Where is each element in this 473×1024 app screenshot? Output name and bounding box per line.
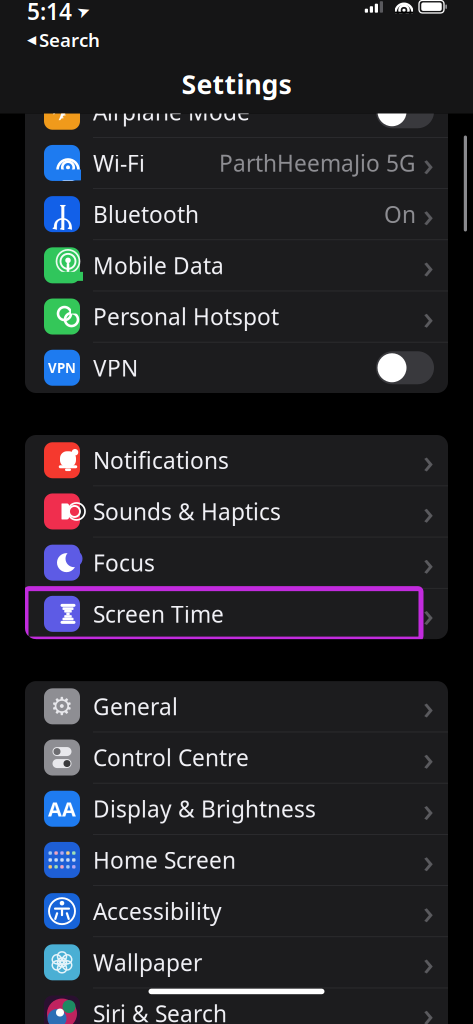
staticText: Search	[39, 27, 100, 52]
staticText: Mobile Data	[93, 250, 224, 280]
button[interactable]: ✈	[25, 86, 448, 137]
staticText: Screen Time	[93, 599, 224, 629]
staticText: ➤	[77, 2, 90, 20]
button[interactable]: Accessibility	[25, 886, 448, 936]
staticText: AA	[48, 795, 76, 822]
staticText: ᛦ	[52, 197, 72, 231]
button[interactable]: 🔔	[25, 435, 448, 485]
staticText: ›	[423, 540, 434, 585]
staticText: ›	[423, 294, 434, 339]
button[interactable]: Siri & Search	[25, 988, 448, 1024]
staticText: ›	[423, 991, 434, 1024]
staticText: Settings	[181, 66, 291, 101]
staticText: ›	[423, 787, 434, 831]
staticText: ›	[423, 838, 434, 882]
staticText: Wi-Fi	[93, 148, 145, 178]
staticText: Notifications	[93, 445, 229, 475]
staticText: Home Screen	[93, 845, 236, 875]
staticText: Airplane Mode	[93, 97, 250, 127]
staticText: On	[384, 199, 416, 229]
staticText: ◀	[27, 33, 36, 46]
staticText: ›	[423, 735, 434, 780]
staticText: Personal Hotspot	[93, 301, 279, 332]
button[interactable]: 🔈	[25, 486, 448, 537]
button[interactable]: ◀	[27, 27, 100, 52]
staticText: Accessibility	[93, 896, 222, 926]
staticText: VPN	[93, 353, 138, 383]
staticText: VPN	[48, 359, 76, 377]
staticText: ›	[423, 592, 434, 636]
staticText: Siri & Search	[93, 998, 227, 1024]
button[interactable]: Control Centre	[25, 732, 448, 783]
staticText: Bluetooth	[93, 199, 199, 229]
staticText: ParthHeemaJio 5G	[219, 148, 416, 178]
staticText: ›	[423, 243, 434, 287]
staticText: ✈	[51, 97, 72, 126]
button[interactable]: @	[25, 291, 448, 342]
staticText: Focus	[93, 548, 155, 578]
staticText: ›	[423, 141, 434, 185]
button[interactable]: Home Screen	[25, 835, 448, 885]
staticText: 5:14	[27, 0, 72, 26]
staticText: ›	[423, 889, 434, 933]
button[interactable]: Wallpaper	[25, 937, 448, 988]
staticText: ›	[423, 684, 434, 728]
button[interactable]: ⌛	[25, 589, 448, 639]
staticText: Control Centre	[93, 742, 249, 773]
staticText: Display & Brightness	[93, 794, 316, 824]
staticText: ⚙	[50, 692, 73, 721]
staticText: ›	[423, 489, 434, 534]
staticText: Wallpaper	[93, 947, 202, 977]
button[interactable]: ⚙	[25, 681, 448, 732]
button[interactable]: ●	[25, 138, 448, 188]
staticText: ›	[423, 438, 434, 482]
button[interactable]: VPN	[25, 342, 448, 393]
staticText: General	[93, 691, 178, 721]
button[interactable]: AA	[25, 783, 448, 834]
staticText: Sounds & Haptics	[93, 496, 281, 526]
button[interactable]: 🌙	[25, 537, 448, 588]
staticText: ›	[423, 192, 434, 236]
button[interactable]: 🛰	[25, 240, 448, 291]
button[interactable]: ᛦ	[25, 189, 448, 239]
staticText: ›	[423, 940, 434, 984]
